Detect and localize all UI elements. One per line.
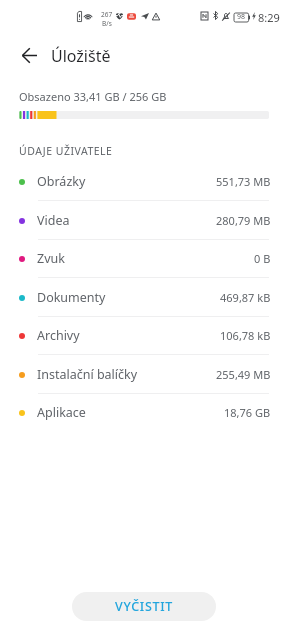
staticText: Dokumenty xyxy=(37,289,106,306)
button[interactable]: Obrázky xyxy=(0,162,288,201)
staticText: 280,79 MB xyxy=(216,213,271,228)
staticText: 469,87 kB xyxy=(220,290,271,305)
staticText: Archivy xyxy=(37,327,80,344)
staticText: 0 B xyxy=(254,251,271,266)
staticText: 551,73 MB xyxy=(216,174,271,189)
staticText: Obsazeno 33,41 GB / 256 GB xyxy=(19,89,167,104)
staticText: Videa xyxy=(37,212,70,229)
staticText: Instalační balíčky xyxy=(37,366,138,383)
staticText: 267 xyxy=(101,10,113,19)
staticText: 255,49 MB xyxy=(216,367,271,382)
staticText: Obrázky xyxy=(37,173,86,190)
button[interactable]: Back xyxy=(15,41,43,69)
staticText: 8:29 xyxy=(258,10,280,25)
button[interactable]: VYČISTIT xyxy=(72,592,216,621)
button[interactable]: Dokumenty xyxy=(0,278,288,317)
staticText: 18,76 GB xyxy=(224,405,271,420)
staticText: Úložiště xyxy=(51,45,111,67)
button[interactable]: Instalační balíčky xyxy=(0,355,288,394)
staticText: 106,78 kB xyxy=(220,328,271,343)
staticText: Aplikace xyxy=(37,404,86,421)
button[interactable]: Videa xyxy=(0,201,288,240)
staticText: ÚDAJE UŽIVATELE xyxy=(19,144,113,158)
staticText: VYČISTIT xyxy=(115,598,174,615)
staticText: Zvuk xyxy=(37,250,65,267)
staticText: 98 xyxy=(237,12,246,22)
button[interactable]: Aplikace xyxy=(0,393,288,432)
button[interactable]: Archivy xyxy=(0,316,288,355)
button[interactable]: Zvuk xyxy=(0,239,288,278)
staticText: B/s xyxy=(102,19,112,28)
